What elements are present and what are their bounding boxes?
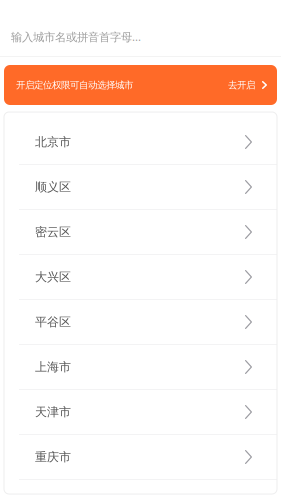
button[interactable]: 密云区 — [4, 210, 277, 255]
button[interactable]: 顺义区 — [4, 165, 277, 210]
button[interactable]: 大兴区 — [4, 255, 277, 300]
staticText: 平谷区 — [35, 314, 71, 329]
button[interactable]: 上海市 — [4, 345, 277, 390]
button[interactable]: 天津市 — [4, 390, 277, 435]
button[interactable]: 北京市 — [4, 120, 277, 165]
staticText: 天津市 — [35, 404, 71, 419]
staticText: 重庆市 — [35, 449, 71, 464]
staticText: 输入城市名或拼音首字母... — [11, 29, 141, 44]
staticText: 密云区 — [35, 224, 71, 239]
staticText: 上海市 — [35, 359, 71, 374]
staticText: 北京市 — [35, 134, 71, 149]
staticText: 去开启 — [228, 79, 255, 91]
button[interactable]: 重庆市 — [4, 435, 277, 480]
button[interactable]: 输入城市名或拼音首字母... — [0, 0, 281, 56]
button[interactable]: 开启定位权限可自动选择城市 — [4, 65, 277, 105]
staticText: 顺义区 — [35, 179, 71, 194]
staticText: 大兴区 — [35, 269, 71, 284]
button[interactable]: 平谷区 — [4, 300, 277, 345]
staticText: 开启定位权限可自动选择城市 — [16, 79, 133, 91]
